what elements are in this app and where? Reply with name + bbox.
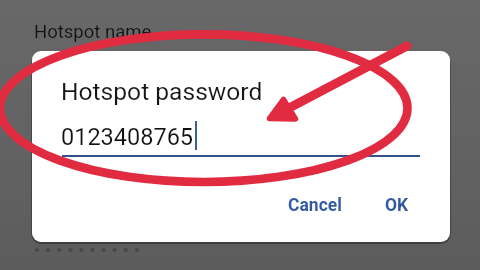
button[interactable]: OK: [377, 187, 417, 224]
staticText: OK: [385, 195, 409, 216]
staticText: 0123408765: [61, 123, 194, 151]
staticText: Hotspot password: [61, 77, 263, 106]
staticText: Cancel: [288, 195, 342, 216]
button[interactable]: Cancel: [280, 187, 350, 224]
staticText: Hotspot name: [34, 21, 152, 43]
